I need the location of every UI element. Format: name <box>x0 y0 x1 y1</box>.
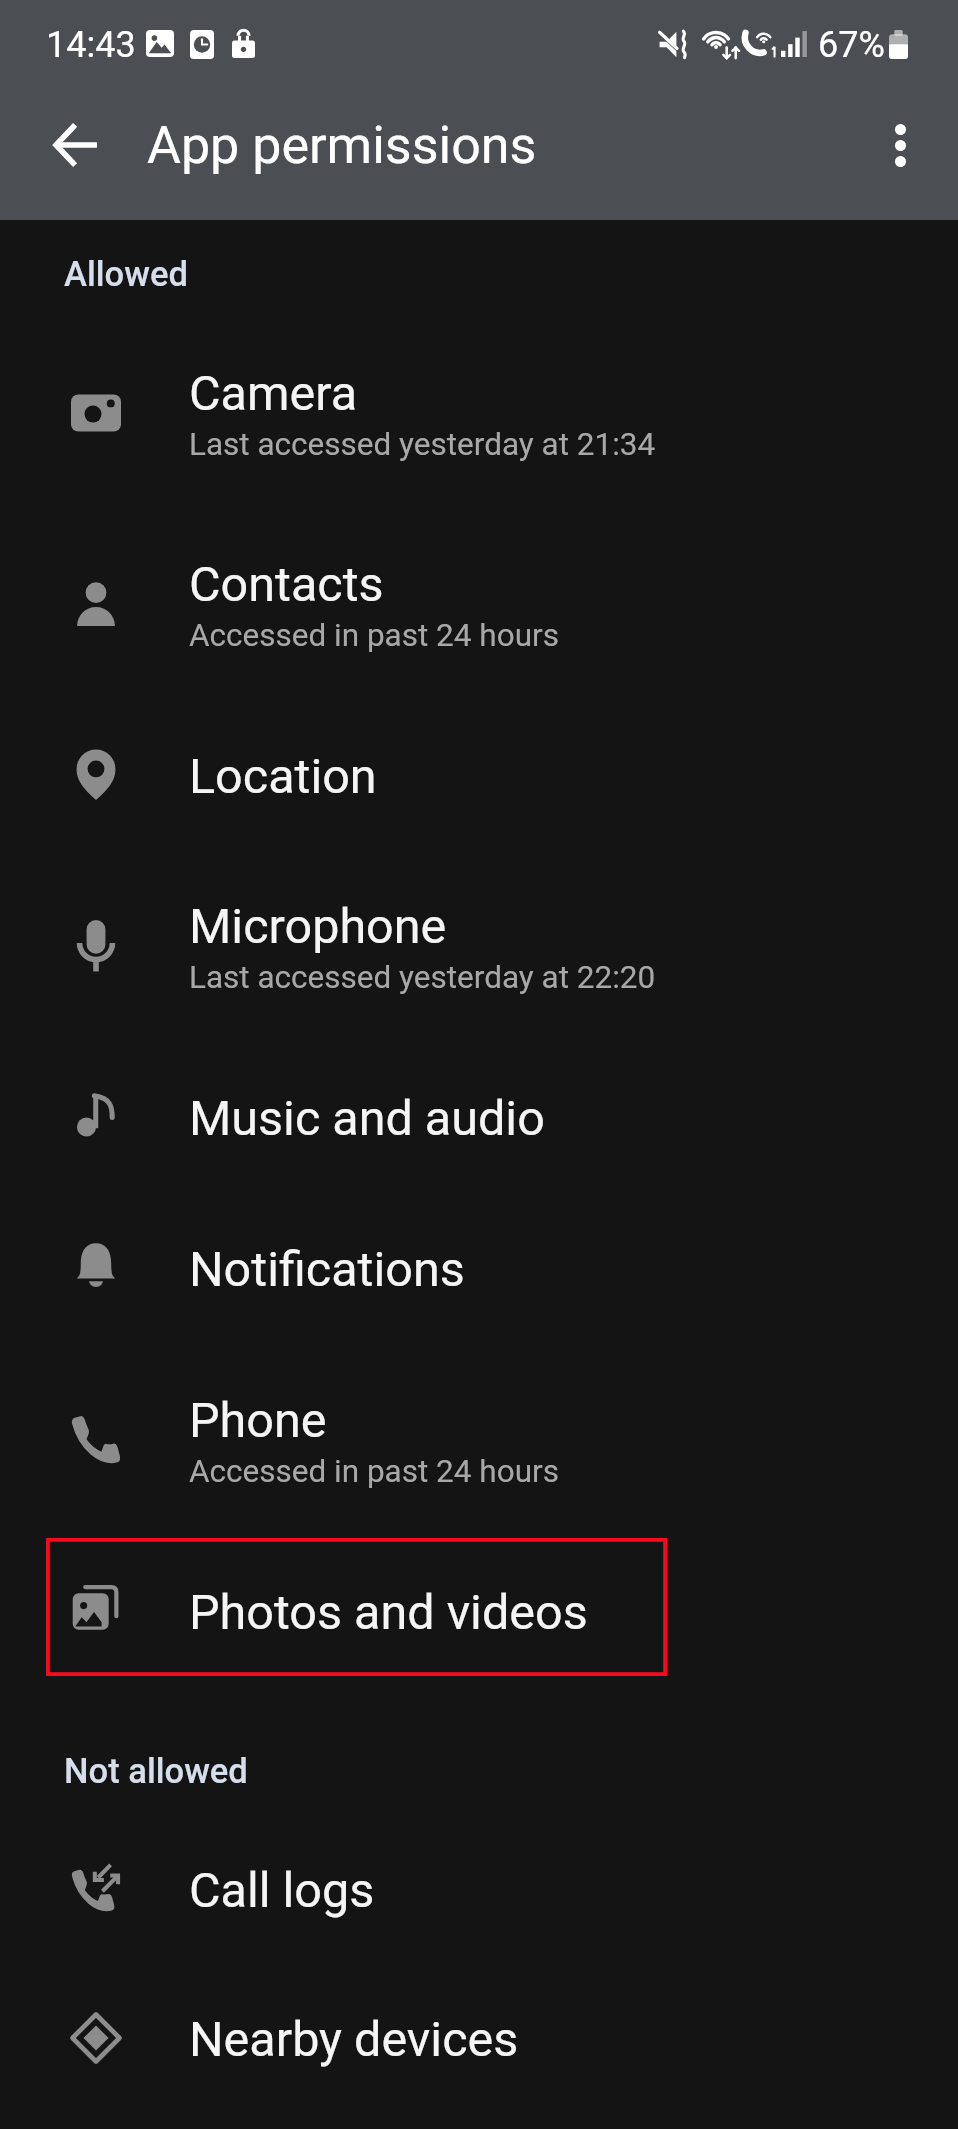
staticText: Notifications <box>189 1241 465 1298</box>
staticText: Phone <box>189 1392 327 1449</box>
staticText: 14:43 <box>46 24 136 66</box>
staticText: Location <box>189 748 377 805</box>
button[interactable]: Call logs <box>0 1813 958 1964</box>
button[interactable]: More options <box>857 102 943 188</box>
button[interactable]: Microphone <box>0 850 958 1041</box>
staticText: Last accessed yesterday at 21:34 <box>189 426 656 463</box>
staticText: 67% <box>818 24 885 66</box>
button[interactable]: Camera <box>0 317 958 508</box>
button[interactable]: Photos and videos <box>0 1535 958 1686</box>
staticText: Allowed <box>64 254 188 294</box>
staticText: Accessed in past 24 hours <box>189 617 559 654</box>
button[interactable]: Notifications <box>0 1192 958 1343</box>
button[interactable]: Location <box>0 699 958 850</box>
staticText: Call logs <box>189 1862 375 1919</box>
button[interactable]: Music and audio <box>0 1041 958 1192</box>
button[interactable]: Contacts <box>0 508 958 699</box>
staticText: Not allowed <box>64 1751 248 1791</box>
staticText: Accessed in past 24 hours <box>189 1453 559 1490</box>
staticText: Contacts <box>189 556 384 613</box>
button[interactable]: Navigate up <box>31 102 117 188</box>
staticText: Nearby devices <box>189 2011 519 2068</box>
button[interactable]: Nearby devices <box>0 1962 958 2113</box>
staticText: Microphone <box>189 898 447 955</box>
staticText: Photos and videos <box>189 1584 588 1641</box>
staticText: Music and audio <box>189 1090 545 1147</box>
staticText: Camera <box>189 365 358 422</box>
staticText: Last accessed yesterday at 22:20 <box>189 959 656 996</box>
staticText: App permissions <box>147 115 537 176</box>
button[interactable]: Phone <box>0 1344 958 1535</box>
